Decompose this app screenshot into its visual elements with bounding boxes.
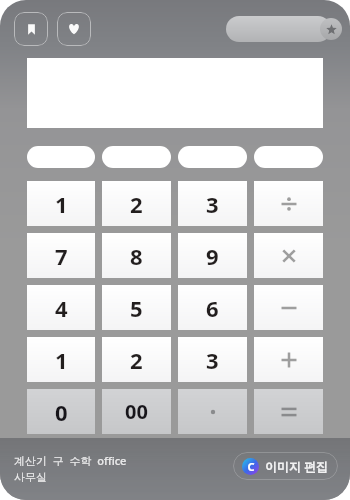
staticText: 1	[55, 345, 68, 375]
button[interactable]: 1	[27, 181, 95, 226]
staticText: 1	[55, 189, 68, 219]
button[interactable]	[27, 146, 95, 168]
staticText: 5	[130, 293, 143, 323]
staticText: C	[247, 459, 255, 474]
button[interactable]: Bookmark	[14, 12, 48, 46]
button[interactable]	[254, 181, 323, 226]
button[interactable]: 2	[102, 181, 171, 226]
staticText: 3	[206, 189, 219, 219]
staticText: 계산기 구 수학 office 사무실	[14, 453, 127, 484]
staticText: 0	[55, 397, 68, 427]
button[interactable]	[178, 146, 247, 168]
button[interactable]	[254, 337, 323, 382]
button[interactable]: C	[242, 452, 329, 480]
staticText: 6	[206, 293, 219, 323]
staticText: 2	[130, 345, 143, 375]
button[interactable]: 1	[27, 337, 95, 382]
button[interactable]	[226, 16, 331, 42]
staticText: 8	[130, 241, 143, 271]
button[interactable]	[254, 285, 323, 330]
button[interactable]: 5	[102, 285, 171, 330]
button[interactable]	[178, 389, 247, 434]
button[interactable]	[102, 146, 171, 168]
button[interactable]: 8	[102, 233, 171, 278]
button[interactable]: 00	[102, 389, 171, 434]
button[interactable]: 4	[27, 285, 95, 330]
button[interactable]: 3	[178, 337, 247, 382]
staticText: 2	[130, 189, 143, 219]
button[interactable]: 3	[178, 181, 247, 226]
button[interactable]: 6	[178, 285, 247, 330]
button[interactable]: 2	[102, 337, 171, 382]
staticText: 3	[206, 345, 219, 375]
button[interactable]: Like	[57, 12, 91, 46]
button[interactable]	[254, 389, 323, 434]
button[interactable]	[254, 233, 323, 278]
button[interactable]: 7	[27, 233, 95, 278]
staticText: 7	[55, 241, 68, 271]
button[interactable]	[254, 146, 323, 168]
staticText: 9	[206, 241, 219, 271]
button[interactable]: Favorite	[320, 18, 342, 40]
button[interactable]: 0	[27, 389, 95, 434]
staticText: 이미지 편집	[265, 458, 329, 474]
button[interactable]: 9	[178, 233, 247, 278]
staticText: 4	[55, 293, 68, 323]
staticText: 00	[125, 398, 148, 425]
